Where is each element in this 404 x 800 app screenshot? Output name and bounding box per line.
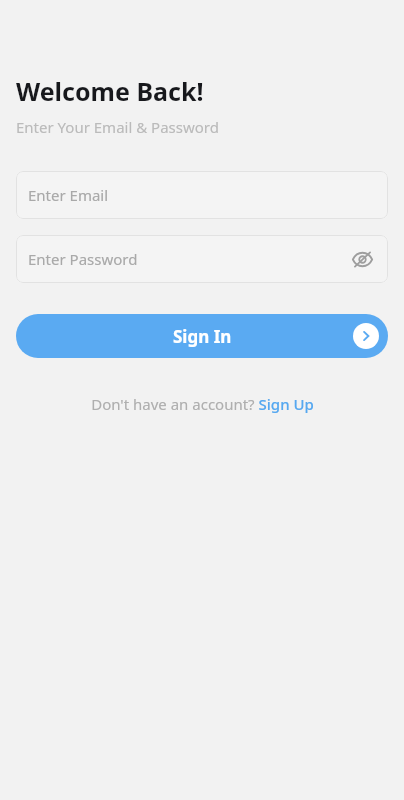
staticText: Welcome Back! — [16, 74, 204, 108]
button[interactable]: Don't have an account? Sign Up — [91, 394, 314, 414]
staticText: Enter Email — [28, 185, 109, 205]
staticText: Don't have an account? Sign Up — [91, 394, 314, 414]
staticText: Enter Your Email & Password — [16, 117, 219, 137]
staticText: Sign In — [173, 325, 232, 348]
button[interactable]: Sign In — [16, 314, 388, 358]
staticText: Enter Password — [28, 249, 138, 269]
button[interactable]: Enter Password — [16, 235, 388, 283]
button[interactable]: Enter Email — [16, 171, 388, 219]
button[interactable]: Show password — [348, 245, 376, 273]
